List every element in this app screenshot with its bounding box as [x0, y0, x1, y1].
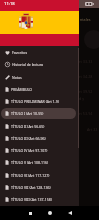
staticText: rt 53-94 — [79, 111, 93, 116]
staticText: Art 33 — [87, 127, 98, 132]
button[interactable]: Recents — [20, 206, 40, 220]
staticText: PREÁMBULO — [11, 87, 32, 92]
button[interactable]: Favoritos — [0, 46, 79, 58]
staticText: rt 39-52 — [79, 89, 93, 94]
button[interactable]: Back — [60, 206, 80, 220]
staticText: Historial de lectura — [12, 62, 44, 67]
button[interactable]: TÍTULO IV (Art 97-107) — [0, 144, 79, 156]
staticText: d y — [79, 96, 85, 101]
staticText: TÍTULO VI (Art 117-127) — [11, 173, 50, 178]
staticText: TÍTULO IV (Art 97-107) — [11, 148, 48, 153]
staticText: TÍTULO VII (Art 128-136) — [11, 185, 51, 190]
staticText: Notas — [12, 75, 22, 80]
staticText: rt 33-33 — [79, 59, 93, 64]
staticText: TÍTULO VIII (Art 137-158) — [11, 197, 52, 202]
button[interactable]: Home — [40, 206, 60, 220]
button[interactable]: TÍTULO II (Art 56-65) — [0, 120, 79, 132]
staticText: TÍTULO V (Art 108-116) — [11, 160, 49, 165]
button[interactable]: TÍTULO I (Art 10-55) — [0, 107, 79, 119]
button[interactable]: TÍTULO VIII (Art 137-158) — [0, 193, 79, 205]
staticText: rt 34-28 — [79, 74, 93, 79]
staticText: 11:18 — [4, 1, 15, 7]
button[interactable]: TÍTULO VII (Art 128-136) — [0, 181, 79, 193]
staticText: TÍTULO III (Art 66-96) — [11, 136, 46, 141]
staticText: TÍTULO II (Art 56-65) — [11, 124, 45, 129]
button[interactable]: PREÁMBULO — [0, 83, 79, 95]
staticText: TÍTULO PRELIMINAR (Art 1-9) — [11, 99, 59, 104]
staticText: Favoritos — [12, 50, 28, 55]
button[interactable]: Historial de lectura — [0, 58, 79, 70]
button[interactable]: TÍTULO V (Art 108-116) — [0, 156, 79, 168]
staticText: TÍTULO I (Art 10-55) — [11, 111, 44, 116]
staticText: ntales — [80, 17, 91, 22]
button[interactable]: TÍTULO III (Art 66-96) — [0, 132, 79, 144]
button[interactable]: TÍTULO VI (Art 117-127) — [0, 169, 79, 181]
button[interactable]: TÍTULO PRELIMINAR (Art 1-9) — [0, 95, 79, 107]
button[interactable]: Notas — [0, 71, 79, 83]
